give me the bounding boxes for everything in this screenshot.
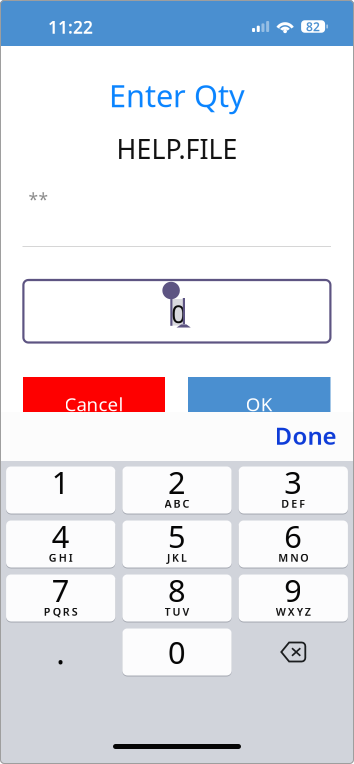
staticText: 8: [168, 570, 186, 610]
button[interactable]: 2: [122, 466, 232, 514]
button[interactable]: 5: [122, 520, 232, 568]
staticText: 0: [171, 297, 185, 330]
button[interactable]: 8: [122, 574, 232, 622]
staticText: G H I: [49, 550, 73, 565]
button[interactable]: Delete: [239, 628, 348, 675]
staticText: 7: [52, 570, 70, 610]
staticText: .: [56, 631, 65, 673]
button[interactable]: 7: [6, 574, 115, 622]
staticText: 11:22: [48, 15, 93, 38]
staticText: 3: [284, 462, 302, 502]
staticText: Enter Qty: [109, 75, 245, 116]
staticText: OK: [246, 392, 273, 416]
button[interactable]: Done: [262, 412, 336, 459]
staticText: 82: [306, 18, 320, 34]
button[interactable]: 3: [239, 466, 348, 514]
button[interactable]: 1: [6, 466, 115, 514]
staticText: 4: [52, 516, 70, 556]
staticText: 5: [168, 516, 186, 556]
button[interactable]: 9: [239, 574, 348, 622]
staticText: D E F: [281, 496, 305, 511]
staticText: P Q R S: [44, 604, 78, 619]
staticText: A B C: [164, 496, 189, 511]
staticText: Cancel: [64, 392, 123, 416]
staticText: 6: [284, 516, 302, 556]
staticText: W X Y Z: [276, 604, 311, 619]
button[interactable]: 4: [6, 520, 115, 568]
staticText: Done: [274, 420, 336, 451]
button[interactable]: Cancel: [23, 377, 165, 431]
staticText: **: [28, 188, 48, 211]
staticText: M N O: [278, 550, 308, 565]
staticText: T U V: [164, 604, 189, 619]
staticText: 1: [52, 462, 70, 502]
button[interactable]: 6: [239, 520, 348, 568]
staticText: J K L: [167, 550, 187, 565]
button[interactable]: 0: [122, 628, 232, 676]
button[interactable]: OK: [188, 377, 330, 431]
staticText: 2: [168, 462, 186, 502]
staticText: 0: [168, 632, 186, 672]
staticText: 9: [284, 570, 302, 610]
button[interactable]: .: [6, 628, 115, 675]
staticText: HELP.FILE: [116, 131, 237, 166]
